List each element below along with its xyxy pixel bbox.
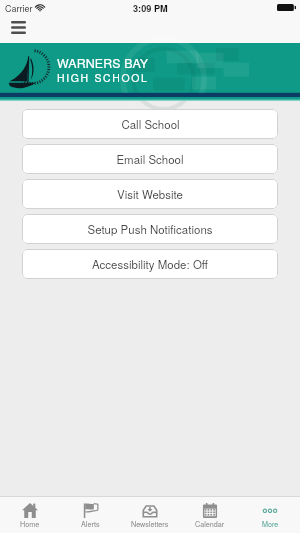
button[interactable]: Newsletters [120,497,180,533]
staticText: Calendar [195,519,225,529]
button[interactable]: Menu [5,17,32,37]
staticText: Alerts [81,519,100,529]
button[interactable]: Accessibility Mode: Off [22,249,278,279]
staticText: WARNERS BAY [57,54,149,72]
staticText: Accessibility Mode: Off [92,256,208,272]
staticText: Home [20,519,40,529]
staticText: Carrier [5,2,33,15]
staticText: Email School [116,151,184,167]
button[interactable]: Visit Website [22,179,278,209]
button[interactable]: Home [0,497,60,533]
staticText: Call School [121,116,180,132]
staticText: More [262,519,279,529]
staticText: Setup Push Notifications [87,221,213,237]
button[interactable]: Email School [22,144,278,174]
staticText: HIGH SCHOOL [57,70,149,85]
button[interactable]: Calendar [180,497,240,533]
button[interactable]: Setup Push Notifications [22,214,278,244]
staticText: Newsletters [131,519,169,529]
button[interactable]: Call School [22,109,278,139]
staticText: Visit Website [117,186,183,202]
button[interactable]: Alerts [60,497,120,533]
staticText: 3:09 PM [133,2,168,15]
button[interactable]: More [240,497,300,533]
